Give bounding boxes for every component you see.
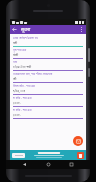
button[interactable]: पूरा नाम क्रम: [13, 48, 83, 60]
button[interactable]: Install app: [10, 150, 86, 160]
button[interactable]: प्रथम आवेदन/प्रमाण पत्र: [13, 36, 83, 48]
staticText: प्रथम आवेदन/प्रमाण पत्र: [13, 36, 38, 40]
staticText: सूचना: [21, 27, 31, 33]
staticText: रा कोड - नाम क्रम: [13, 96, 32, 100]
button[interactable]: जिला कोड - नाम क्रम: [13, 84, 83, 96]
staticText: ३००१.: [13, 101, 21, 105]
button[interactable]: Back: [10, 25, 19, 34]
staticText: ६/७३,००१: [13, 89, 26, 93]
button[interactable]: Home: [44, 160, 53, 169]
staticText: जिला कोड - नाम क्रम: [13, 84, 36, 88]
staticText: व्यवसायगत पता, नाम नीतम आवश्यक: [13, 72, 53, 76]
staticText: ३००१.: [13, 113, 21, 117]
staticText: पता: [13, 60, 18, 64]
button[interactable]: व्यवसायगत पता, नाम नीतम आवश्यक: [13, 72, 83, 84]
button[interactable]: Back: [20, 160, 29, 169]
button[interactable]: रा कोड - नाम क्रम: [13, 108, 83, 120]
staticText: १/३४८/११ नयी: [13, 65, 32, 69]
button[interactable]: रा कोड - नाम क्रम: [13, 96, 83, 108]
staticText: पंजी: [13, 53, 19, 57]
button[interactable]: Add: [73, 136, 83, 146]
button[interactable]: Recent apps: [67, 160, 76, 169]
staticText: पूरा नाम क्रम: [13, 48, 27, 52]
staticText: जी: [13, 77, 17, 81]
button[interactable]: Install app: [77, 152, 84, 159]
button[interactable]: पता: [13, 60, 83, 72]
staticText: परी: [13, 41, 18, 45]
button[interactable]: More options: [77, 25, 86, 34]
staticText: रा कोड - नाम क्रम: [13, 108, 32, 112]
